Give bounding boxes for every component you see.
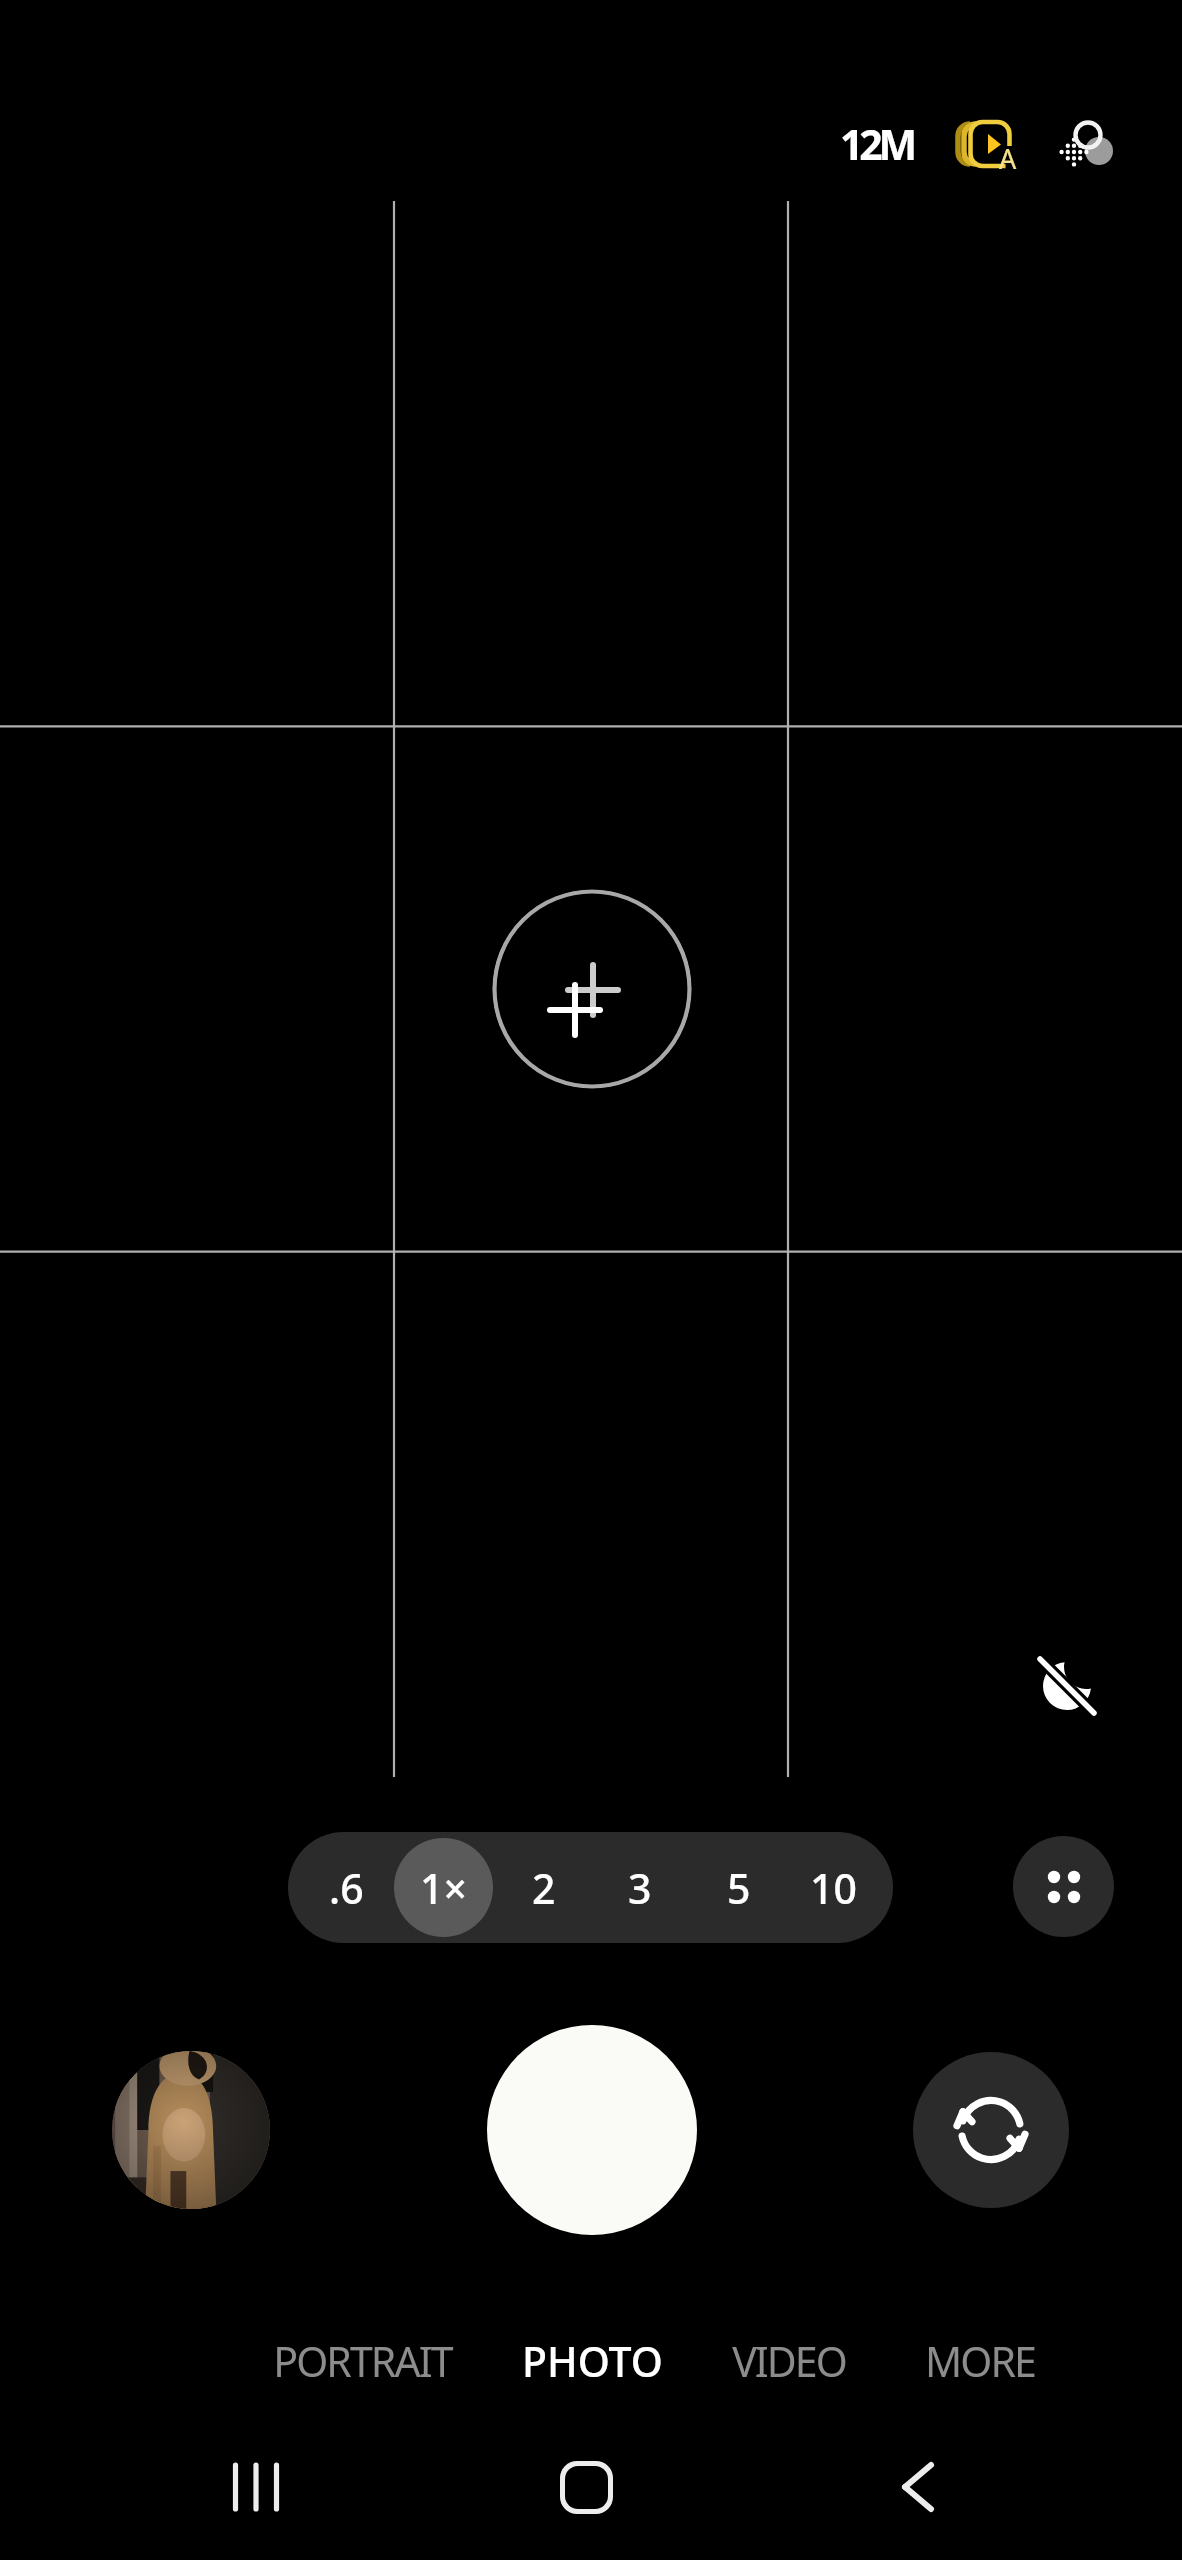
staticText: A [999, 140, 1017, 177]
staticText: PORTRAIT [273, 2333, 452, 2389]
button[interactable]: VIDEO [659, 2317, 919, 2405]
button[interactable]: Back [856, 2427, 976, 2547]
button[interactable]: Switch camera [913, 2052, 1069, 2208]
button[interactable]: Take photo [487, 2025, 697, 2235]
staticText: MORE [925, 2333, 1035, 2389]
button[interactable]: Camera settings [1013, 1836, 1114, 1937]
button[interactable]: Filters and effects [1038, 96, 1134, 192]
staticText: 10 [810, 1860, 857, 1916]
button[interactable]: Recents [196, 2427, 316, 2547]
button[interactable]: PHOTO [462, 2317, 722, 2405]
staticText: .6 [329, 1860, 364, 1916]
button[interactable]: 12M [812, 96, 941, 192]
staticText: VIDEO [732, 2333, 846, 2389]
button[interactable]: 3 [590, 1838, 689, 1937]
staticText: PHOTO [522, 2333, 663, 2389]
button[interactable]: Night mode off [1019, 1638, 1115, 1734]
button[interactable]: 1× [394, 1838, 493, 1937]
button[interactable]: Level guide [492, 889, 692, 1089]
button[interactable]: 10 [784, 1838, 883, 1937]
button[interactable]: 5 [689, 1838, 788, 1937]
button[interactable]: 2 [494, 1838, 593, 1937]
button[interactable]: .6 [297, 1838, 396, 1937]
staticText: 3 [628, 1860, 652, 1916]
staticText: 12M [840, 116, 913, 172]
button[interactable]: PORTRAIT [232, 2317, 492, 2405]
button[interactable]: Home [526, 2427, 646, 2547]
staticText: 5 [727, 1860, 751, 1916]
button[interactable]: Motion photo auto [937, 96, 1033, 192]
button[interactable]: MORE [850, 2317, 1110, 2405]
button[interactable]: Gallery [112, 2051, 270, 2209]
staticText: 2 [532, 1860, 556, 1916]
staticText: 1× [420, 1860, 467, 1916]
